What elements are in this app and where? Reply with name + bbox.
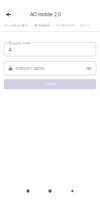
staticText: По паспорту bbox=[55, 24, 73, 27]
staticText: По номеру карты bbox=[4, 24, 28, 27]
button[interactable]: Back bbox=[61, 185, 83, 196]
staticText: По сч bbox=[80, 24, 89, 27]
button[interactable]: Back bbox=[3, 9, 14, 20]
staticText: Войти bbox=[44, 82, 55, 86]
staticText: АО mobile 2.0 bbox=[30, 12, 61, 17]
button[interactable]: По сч bbox=[78, 21, 90, 30]
button[interactable]: Войти bbox=[4, 79, 96, 89]
staticText: По логину bbox=[34, 24, 49, 27]
button[interactable]: Recent apps bbox=[17, 185, 39, 196]
button[interactable]: По номеру карты bbox=[3, 21, 28, 30]
button[interactable]: По логину bbox=[32, 21, 50, 30]
staticText: Введите пароль bbox=[15, 66, 44, 71]
button[interactable]: По паспорту bbox=[54, 21, 74, 30]
staticText: Введите логин bbox=[8, 41, 31, 45]
button[interactable]: Home bbox=[39, 185, 61, 196]
